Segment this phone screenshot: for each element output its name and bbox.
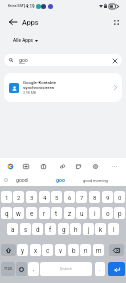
button[interactable]: r <box>39 207 50 219</box>
button[interactable]: Shift <box>1 244 16 256</box>
button[interactable]: . <box>95 262 105 276</box>
staticText: f <box>49 226 52 233</box>
button[interactable]: Backspace <box>109 244 124 256</box>
staticText: 0 <box>118 194 122 201</box>
staticText: goo <box>56 177 65 183</box>
button[interactable]: goo <box>4 54 122 66</box>
button[interactable]: e <box>26 207 37 219</box>
staticText: 5 <box>55 194 59 201</box>
staticText: j <box>88 226 90 233</box>
button[interactable]: k <box>95 223 106 235</box>
button[interactable]: Google search <box>4 160 16 172</box>
staticText: 1 <box>5 194 9 201</box>
button[interactable]: Google-Kontakte <box>4 73 122 102</box>
button[interactable]: j <box>83 223 94 235</box>
button[interactable]: l <box>108 223 119 235</box>
staticText: z <box>68 210 72 217</box>
button[interactable]: g <box>58 223 69 235</box>
button[interactable]: v <box>55 244 66 256</box>
button[interactable]: m <box>93 244 104 256</box>
button[interactable]: f <box>45 223 56 235</box>
staticText: 4 <box>43 194 47 201</box>
staticText: y <box>21 247 24 254</box>
staticText: good morning <box>83 178 108 183</box>
button[interactable]: n <box>80 244 91 256</box>
button[interactable]: More <box>108 160 120 172</box>
button[interactable]: a <box>7 223 18 235</box>
staticText: Google-Kontakte <box>23 80 57 85</box>
button[interactable]: p <box>114 207 125 219</box>
button[interactable]: s <box>20 223 31 235</box>
button[interactable]: w <box>13 207 24 219</box>
button[interactable]: 8 <box>89 191 100 203</box>
button[interactable]: 6 <box>64 191 75 203</box>
staticText: 9 <box>106 194 110 201</box>
staticText: d <box>36 226 40 233</box>
button[interactable]: GIF <box>20 160 32 172</box>
staticText: Deutsch <box>60 267 72 271</box>
button[interactable]: Back <box>5 14 21 30</box>
button[interactable]: o <box>102 207 113 219</box>
button[interactable]: c <box>42 244 53 256</box>
staticText: o <box>106 210 110 217</box>
staticText: synchronisieren <box>23 85 55 90</box>
staticText: good <box>16 177 28 183</box>
button[interactable]: 5 <box>51 191 62 203</box>
staticText: 7 <box>80 194 84 201</box>
staticText: i <box>94 210 96 217</box>
button[interactable]: z <box>64 207 75 219</box>
staticText: 14:19 <box>23 4 35 9</box>
button[interactable]: Symbols <box>1 262 15 276</box>
button[interactable]: good morning <box>83 178 108 183</box>
staticText: k <box>99 226 103 233</box>
staticText: b <box>72 247 76 254</box>
button[interactable]: 9 <box>102 191 113 203</box>
button[interactable]: y <box>17 244 28 256</box>
staticText: 3,98 MB <box>23 91 37 95</box>
button[interactable]: Alle Apps <box>13 35 38 47</box>
staticText: l <box>113 226 115 233</box>
staticText: Apps <box>22 18 39 26</box>
button[interactable]: good <box>16 177 28 183</box>
button[interactable]: Settings <box>89 160 101 172</box>
button[interactable]: h <box>70 223 81 235</box>
button[interactable]: d <box>32 223 43 235</box>
staticText: a <box>11 226 15 233</box>
button[interactable]: i <box>89 207 100 219</box>
button[interactable]: More options <box>109 15 123 29</box>
button[interactable]: Search <box>108 262 125 276</box>
staticText: 3 <box>30 194 34 201</box>
button[interactable]: 0 <box>114 191 125 203</box>
staticText: Alle Apps <box>13 38 33 44</box>
button[interactable]: 7 <box>76 191 87 203</box>
button[interactable]: q <box>1 207 12 219</box>
staticText: n <box>84 247 88 254</box>
button[interactable]: , <box>28 262 39 276</box>
button[interactable]: u <box>76 207 87 219</box>
staticText: h <box>74 226 78 233</box>
staticText: q <box>5 210 9 217</box>
button[interactable]: Clear search <box>110 56 119 65</box>
button[interactable]: goo <box>56 177 65 183</box>
button[interactable]: t <box>51 207 62 219</box>
button[interactable]: 1 <box>1 191 12 203</box>
button[interactable]: Emoji <box>16 262 27 276</box>
button[interactable]: Themes <box>56 160 68 172</box>
button[interactable]: 4 <box>39 191 50 203</box>
button[interactable]: 2 <box>13 191 24 203</box>
staticText: 2 <box>17 194 21 201</box>
button[interactable]: Space <box>40 262 92 276</box>
staticText: 8 <box>93 194 97 201</box>
staticText: p <box>118 210 122 217</box>
staticText: e <box>30 210 34 217</box>
staticText: v <box>59 247 63 254</box>
button[interactable]: Clipboard <box>37 160 49 172</box>
staticText: goo <box>19 57 28 63</box>
button[interactable]: 3 <box>26 191 37 203</box>
staticText: r <box>43 210 46 217</box>
staticText: m <box>96 247 102 254</box>
button[interactable]: x <box>30 244 41 256</box>
staticText: g <box>62 226 66 233</box>
button[interactable]: b <box>68 244 79 256</box>
button[interactable]: Stickers <box>72 160 84 172</box>
